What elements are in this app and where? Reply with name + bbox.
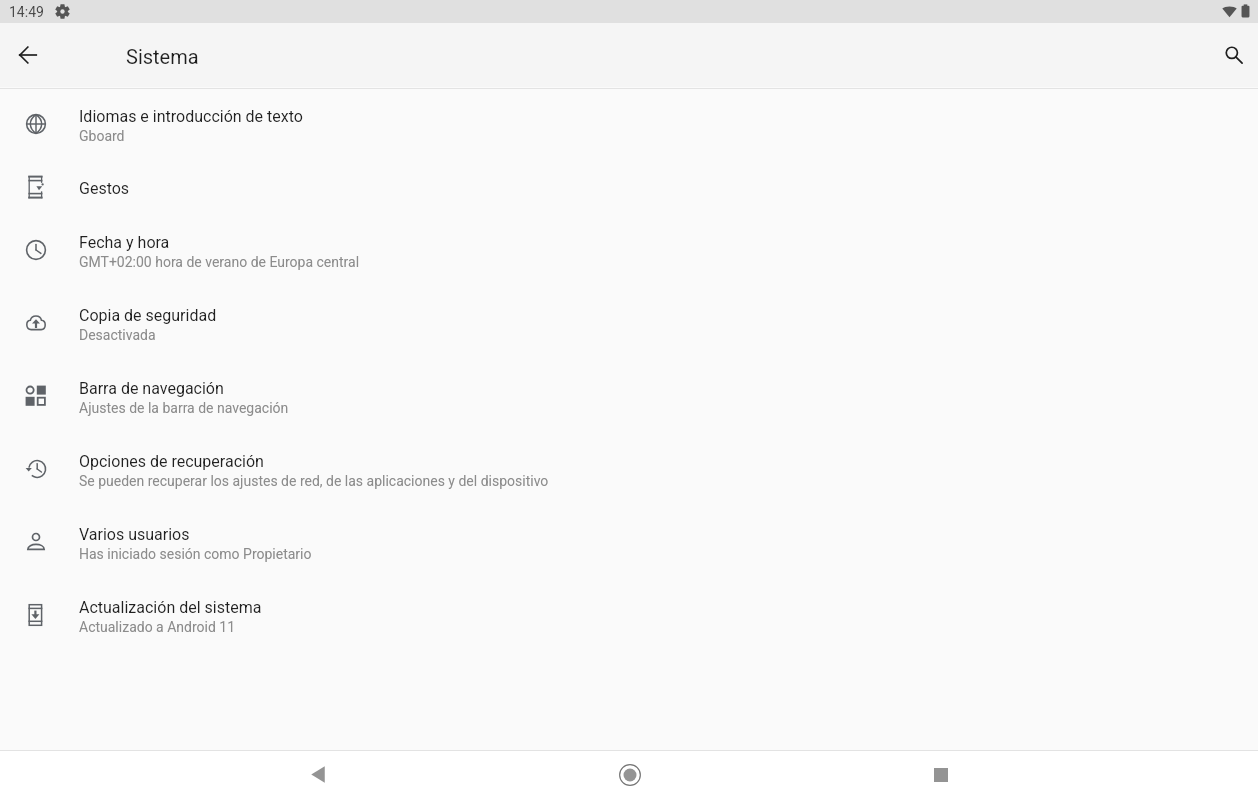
- staticText: Opciones de recuperación: [79, 452, 264, 471]
- staticText: Actualizado a Android 11: [79, 619, 236, 635]
- button[interactable]: Home: [474, 751, 785, 798]
- staticText: Has iniciado sesión como Propietario: [79, 546, 312, 562]
- button[interactable]: Varios usuarios: [0, 505, 1258, 578]
- button[interactable]: Barra de navegación: [0, 359, 1258, 432]
- staticText: Sistema: [126, 45, 199, 68]
- button[interactable]: Recent apps: [785, 751, 1096, 798]
- staticText: Barra de navegación: [79, 379, 224, 398]
- button[interactable]: Idiomas e introducción de texto: [0, 87, 1258, 160]
- button[interactable]: Back: [162, 751, 474, 798]
- button[interactable]: Back: [0, 23, 56, 87]
- button[interactable]: Copia de seguridad: [0, 286, 1258, 359]
- button[interactable]: Search: [1210, 23, 1258, 87]
- staticText: Desactivada: [79, 327, 156, 343]
- staticText: Varios usuarios: [79, 525, 190, 544]
- button[interactable]: Opciones de recuperación: [0, 432, 1258, 505]
- staticText: Copia de seguridad: [79, 306, 217, 325]
- button[interactable]: Fecha y hora: [0, 213, 1258, 286]
- staticText: Ajustes de la barra de navegación: [79, 400, 289, 416]
- staticText: Actualización del sistema: [79, 598, 262, 617]
- staticText: Gestos: [79, 179, 130, 198]
- staticText: Fecha y hora: [79, 233, 170, 252]
- button[interactable]: Gestos: [0, 160, 1258, 213]
- staticText: 14:49: [9, 4, 44, 20]
- staticText: Se pueden recuperar los ajustes de red, …: [79, 473, 549, 489]
- staticText: Idiomas e introducción de texto: [79, 107, 303, 126]
- button[interactable]: Actualización del sistema: [0, 578, 1258, 651]
- staticText: Gboard: [79, 128, 125, 144]
- staticText: GMT+02:00 hora de verano de Europa centr…: [79, 254, 360, 270]
